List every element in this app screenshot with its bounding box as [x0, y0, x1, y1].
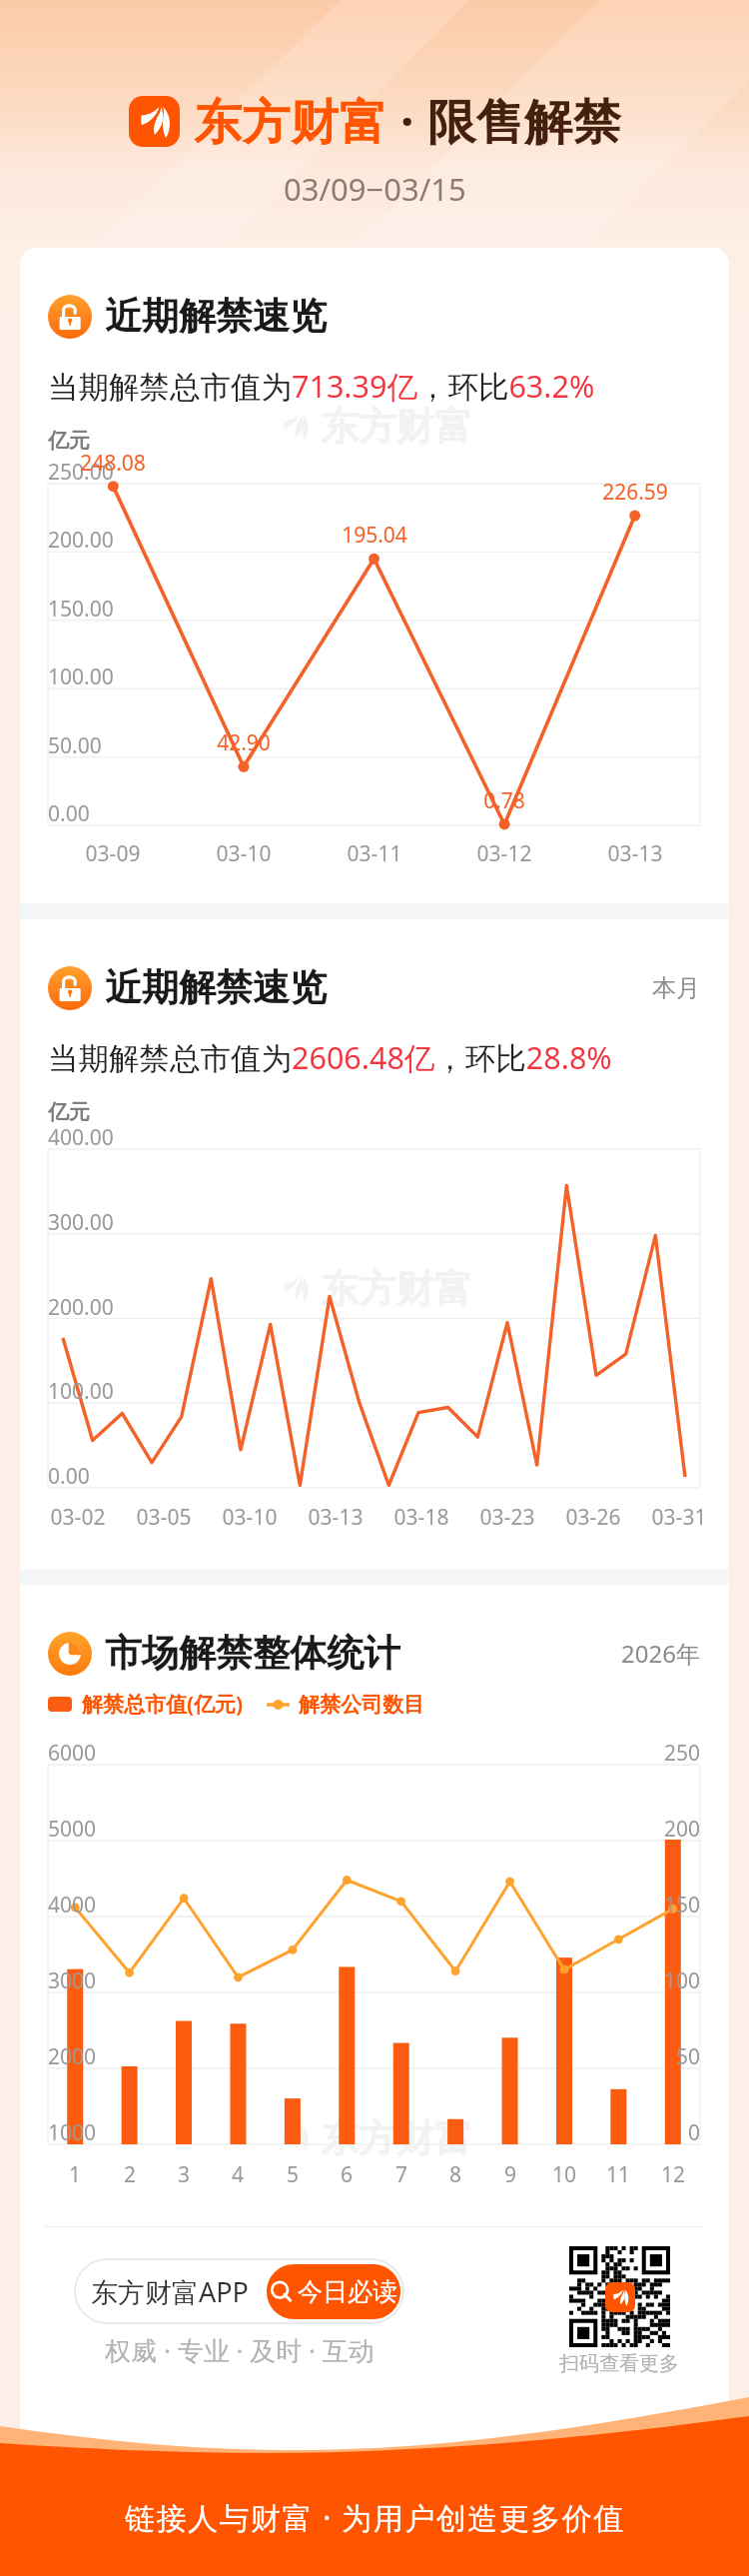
staticText: 2: [20, 2160, 330, 2189]
staticText: 东方财富APP: [91, 2273, 249, 2310]
staticText: 03-02: [20, 1503, 278, 1532]
staticText: 今日必读: [298, 2276, 397, 2307]
staticText: 4: [38, 2160, 437, 2189]
staticText: 0: [301, 2118, 700, 2147]
staticText: 03-13: [435, 839, 729, 868]
staticText: 03-09: [20, 839, 313, 868]
staticText: 200: [301, 1815, 700, 1844]
staticText: 本月: [652, 973, 700, 1003]
staticText: 近期解禁速览: [105, 293, 327, 340]
staticText: 4000: [48, 1891, 447, 1920]
staticText: 东方财富: [321, 403, 472, 451]
staticText: 03-11: [175, 839, 574, 868]
staticText: 1000: [48, 2118, 447, 2147]
staticText: 东方财富: [321, 1265, 472, 1313]
staticText: 解禁公司数目: [299, 1692, 424, 1718]
staticText: 7: [202, 2160, 601, 2189]
staticText: 东方财富: [321, 2114, 472, 2162]
staticText: 链接人与财富 · 为用户创造更多价值: [125, 2497, 625, 2538]
staticText: 50.00: [48, 731, 447, 760]
staticText: 3: [20, 2160, 383, 2189]
staticText: 解禁总市值(亿元): [82, 1690, 244, 1719]
staticText: 市场解禁整体统计: [105, 1630, 400, 1677]
staticText: 150.00: [48, 595, 447, 624]
staticText: 权威 · 专业 · 及时 · 互动: [30, 2332, 449, 2368]
staticText: 11: [418, 2160, 729, 2189]
staticText: 0.78: [305, 786, 704, 815]
staticText: 250.00: [48, 458, 447, 487]
staticText: 9: [311, 2160, 710, 2189]
staticText: 50: [301, 2042, 700, 2071]
staticText: 12: [473, 2160, 729, 2189]
staticText: 100.00: [48, 662, 447, 691]
staticText: 300.00: [48, 1208, 447, 1237]
staticText: 195.04: [175, 521, 574, 550]
staticText: 03-10: [50, 1503, 449, 1532]
staticText: 150: [301, 1891, 700, 1920]
staticText: 6: [147, 2160, 546, 2189]
staticText: 400.00: [48, 1123, 447, 1152]
staticText: 0.00: [48, 1462, 447, 1491]
staticText: 03-13: [136, 1503, 535, 1532]
staticText: 5000: [48, 1815, 447, 1844]
staticText: 250: [301, 1739, 700, 1768]
staticText: 亿元: [48, 1099, 447, 1125]
staticText: 03/09−03/15: [284, 168, 466, 210]
staticText: 03-31: [479, 1503, 729, 1532]
staticText: 200.00: [48, 1293, 447, 1322]
staticText: 03-23: [308, 1503, 707, 1532]
staticText: 3000: [48, 1966, 447, 1995]
staticText: 亿元: [48, 428, 447, 454]
staticText: 近期解禁速览: [105, 964, 327, 1011]
staticText: 0.00: [48, 799, 447, 828]
staticText: 6000: [48, 1739, 447, 1768]
staticText: 当期解禁总市值为2606.48亿，环比28.8%: [48, 1036, 612, 1078]
staticText: 03-05: [20, 1503, 364, 1532]
staticText: 42.90: [44, 728, 443, 757]
staticText: 248.08: [20, 449, 313, 478]
staticText: 扫码查看更多: [419, 2351, 729, 2376]
staticText: 03-12: [305, 839, 704, 868]
staticText: 5: [93, 2160, 492, 2189]
staticText: 2026年: [621, 1637, 700, 1670]
button[interactable]: 东方财富APP: [74, 2258, 404, 2324]
staticText: 2000: [48, 2042, 447, 2071]
staticText: 200.00: [48, 526, 447, 555]
staticText: 03-10: [44, 839, 443, 868]
staticText: 当期解禁总市值为713.39亿，环比63.2%: [48, 365, 595, 407]
staticText: 8: [256, 2160, 655, 2189]
staticText: 10: [365, 2160, 729, 2189]
staticText: 03-18: [222, 1503, 621, 1532]
staticText: 226.59: [435, 478, 729, 507]
staticText: 东方财富 · 限售解禁: [194, 88, 621, 154]
staticText: 1: [20, 2160, 275, 2189]
staticText: 03-26: [393, 1503, 729, 1532]
staticText: 100: [301, 1966, 700, 1995]
staticText: 100.00: [48, 1377, 447, 1406]
